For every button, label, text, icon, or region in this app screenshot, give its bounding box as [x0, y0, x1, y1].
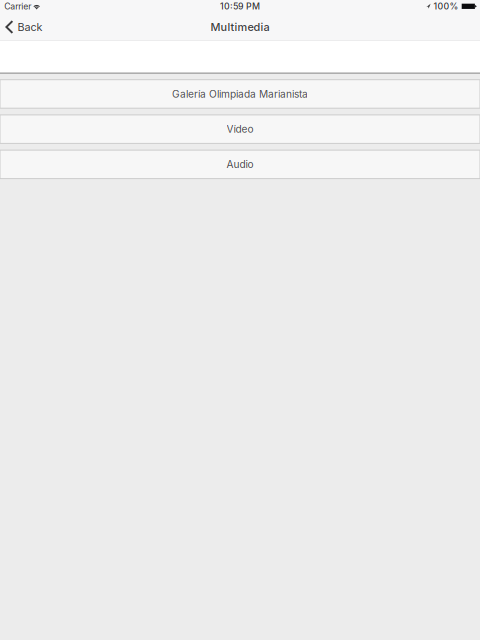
button[interactable]: Back	[0, 16, 51, 38]
staticText: Galería Olimpiada Marianista	[172, 88, 308, 100]
staticText: Carrier	[4, 1, 31, 12]
staticText: 10:59 PM	[220, 1, 260, 12]
staticText: Back	[18, 20, 43, 34]
staticText: Vídeo	[226, 123, 253, 135]
button[interactable]: Galería Olimpiada Marianista	[0, 80, 480, 108]
staticText: 100%	[433, 1, 458, 12]
button[interactable]: Audio	[0, 150, 480, 179]
button[interactable]: Vídeo	[0, 115, 480, 143]
staticText: Audio	[226, 158, 253, 170]
staticText: Multimedia	[210, 20, 269, 34]
